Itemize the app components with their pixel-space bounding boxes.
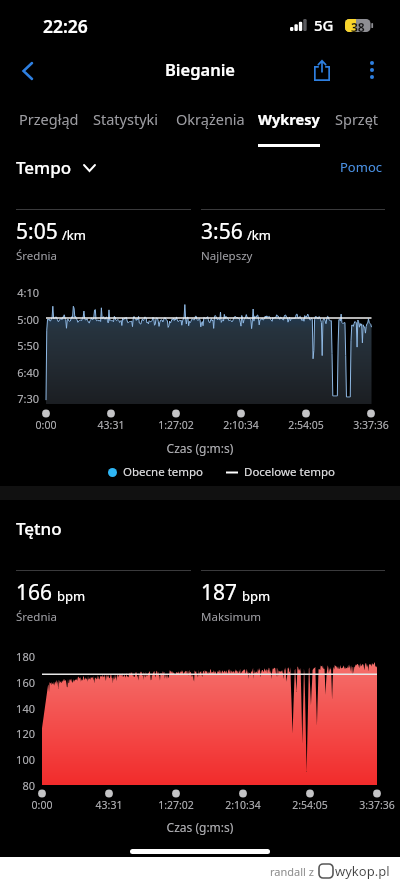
staticText: 7:30: [0, 391, 39, 406]
staticText: /km: [62, 226, 86, 244]
staticText: /km: [247, 226, 271, 244]
staticText: 187: [201, 578, 238, 607]
staticText: bpm: [57, 587, 86, 605]
staticText: bpm: [242, 587, 271, 605]
staticText: Docelowe tempo: [244, 464, 335, 480]
staticText: Sprzęt: [335, 109, 379, 129]
staticText: 38: [351, 19, 365, 32]
button[interactable]: Przegłąd: [9, 100, 89, 144]
staticText: 1:27:02: [141, 418, 211, 432]
staticText: 4:10: [0, 285, 39, 300]
staticText: Czas (g:m:s): [0, 440, 400, 456]
button[interactable]: Okrążenia: [170, 100, 250, 144]
staticText: 6:40: [0, 365, 39, 380]
staticText: 2:10:34: [208, 798, 278, 812]
button[interactable]: More options: [350, 48, 394, 92]
staticText: 5G: [314, 15, 334, 35]
staticText: 2:10:34: [206, 418, 276, 432]
staticText: Najlepszy: [201, 248, 253, 264]
button[interactable]: Sprzęt: [317, 100, 397, 144]
staticText: 43:31: [74, 798, 144, 812]
button[interactable]: Back: [5, 48, 50, 93]
staticText: 1:27:02: [141, 798, 211, 812]
button[interactable]: Tętno: [16, 517, 62, 540]
staticText: 166: [16, 578, 53, 607]
staticText: Wykresy: [258, 109, 320, 129]
staticText: randall z: [270, 864, 317, 879]
staticText: 180: [0, 649, 35, 664]
button[interactable]: Statystyki: [86, 100, 166, 144]
staticText: Tempo: [16, 156, 72, 179]
staticText: Bieganie: [165, 58, 236, 80]
staticText: 2:54:05: [275, 798, 345, 812]
staticText: Pomoc: [340, 158, 382, 176]
staticText: 22:26: [43, 14, 88, 38]
staticText: 100: [0, 752, 35, 767]
staticText: Średnia: [16, 609, 57, 625]
staticText: 5:50: [0, 338, 39, 353]
staticText: 0:00: [11, 418, 81, 432]
staticText: 2:54:05: [271, 418, 341, 432]
button[interactable]: Pomoc: [340, 158, 382, 176]
staticText: 160: [0, 675, 35, 690]
staticText: Przegłąd: [19, 109, 79, 129]
staticText: 3:37:36: [342, 798, 400, 812]
staticText: 5:05: [16, 217, 58, 246]
staticText: Średnia: [16, 248, 57, 264]
staticText: Statystyki: [93, 109, 159, 129]
staticText: Obecne tempo: [123, 464, 204, 480]
staticText: Czas (g:m:s): [0, 819, 400, 835]
staticText: 80: [0, 778, 35, 793]
staticText: wykop.pl: [335, 862, 390, 880]
staticText: 43:31: [76, 418, 146, 432]
staticText: Maksimum: [201, 609, 262, 625]
staticText: 120: [0, 726, 35, 741]
button[interactable]: Wykresy: [249, 100, 329, 144]
staticText: Tętno: [16, 517, 62, 540]
staticText: 140: [0, 701, 35, 716]
button[interactable]: Share: [300, 48, 344, 92]
staticText: 5:00: [0, 312, 39, 327]
button[interactable]: Tempo: [16, 156, 96, 179]
staticText: 3:56: [201, 217, 243, 246]
staticText: Okrążenia: [176, 109, 245, 129]
staticText: 0:00: [7, 798, 77, 812]
staticText: 3:37:36: [336, 418, 400, 432]
